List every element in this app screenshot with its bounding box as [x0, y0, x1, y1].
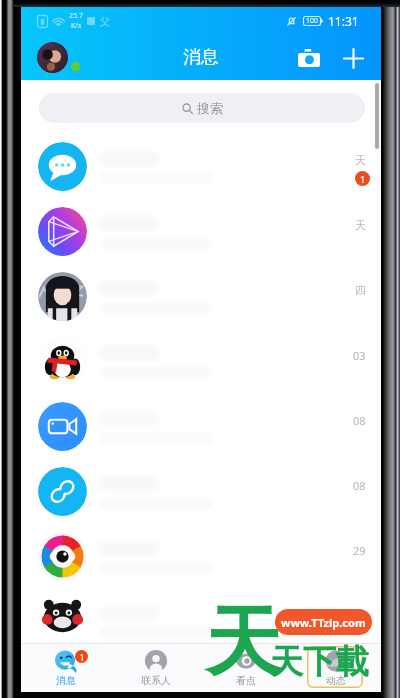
- button[interactable]: Camera: [295, 44, 323, 72]
- staticText: 25.7: [69, 11, 83, 21]
- button[interactable]: 03: [21, 329, 381, 394]
- staticText: 03: [353, 348, 366, 363]
- staticText: www.TTzip.com: [281, 615, 366, 630]
- button[interactable]: 08: [21, 459, 381, 524]
- button[interactable]: 看点: [201, 644, 291, 692]
- staticText: 天: [355, 218, 366, 232]
- staticText: 11:31: [328, 13, 359, 29]
- staticText: 搜索: [197, 100, 223, 116]
- staticText: 100: [306, 16, 319, 26]
- button[interactable]: 动态: [291, 644, 381, 692]
- staticText: 天下載: [270, 641, 369, 683]
- button[interactable]: 联系人: [111, 644, 201, 692]
- staticText: 天: [355, 153, 366, 167]
- staticText: 动态: [326, 674, 346, 687]
- staticText: 1: [360, 173, 366, 185]
- staticText: 看点: [236, 674, 256, 687]
- button[interactable]: 1: [21, 644, 111, 692]
- staticText: 联系人: [141, 674, 171, 687]
- staticText: 08: [353, 478, 366, 493]
- staticText: 08: [353, 413, 366, 428]
- button[interactable]: 天: [21, 199, 381, 264]
- button[interactable]: [21, 589, 381, 643]
- button[interactable]: 29: [21, 524, 381, 589]
- button[interactable]: 四: [21, 264, 381, 329]
- staticText: 1: [79, 651, 85, 663]
- staticText: K/s: [71, 21, 82, 31]
- staticText: 29: [353, 543, 366, 558]
- staticText: 天: [205, 595, 281, 691]
- button[interactable]: Profile: [37, 42, 68, 73]
- button[interactable]: Add: [339, 44, 367, 72]
- staticText: 消息: [183, 46, 219, 69]
- staticText: 消息: [56, 674, 76, 687]
- staticText: 父: [100, 15, 110, 28]
- button[interactable]: 搜索: [39, 93, 365, 123]
- button[interactable]: 天: [21, 134, 381, 199]
- staticText: 四: [355, 283, 366, 297]
- button[interactable]: 08: [21, 394, 381, 459]
